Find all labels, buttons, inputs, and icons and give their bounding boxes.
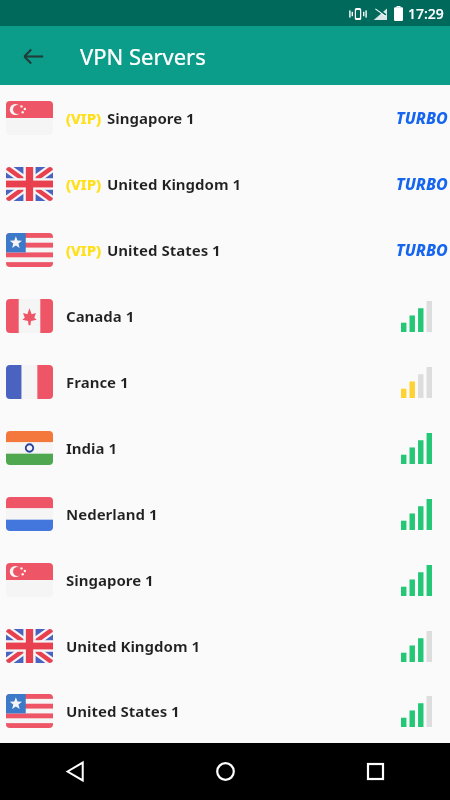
staticText: (VIP) xyxy=(66,240,102,260)
button[interactable]: (VIP) xyxy=(0,151,450,217)
button[interactable]: United States 1 xyxy=(0,679,450,743)
button[interactable]: Singapore 1 xyxy=(0,547,450,613)
button[interactable]: Nederland 1 xyxy=(0,481,450,547)
staticText: United Kingdom 1 xyxy=(66,636,201,656)
button[interactable]: India 1 xyxy=(0,415,450,481)
staticText: TURBO xyxy=(396,173,448,195)
button[interactable]: Back xyxy=(10,33,56,79)
staticText: United Kingdom 1 xyxy=(107,174,242,194)
staticText: Singapore 1 xyxy=(66,570,154,590)
staticText: TURBO xyxy=(396,239,448,261)
button[interactable]: Recents xyxy=(300,743,450,800)
staticText: Canada 1 xyxy=(66,306,135,326)
staticText: VPN Servers xyxy=(80,41,206,71)
button[interactable]: (VIP) xyxy=(0,217,450,283)
staticText: France 1 xyxy=(66,372,129,392)
staticText: (VIP) xyxy=(66,174,102,194)
staticText: TURBO xyxy=(396,107,448,129)
staticText: India 1 xyxy=(66,438,118,458)
button[interactable]: Back xyxy=(0,743,150,800)
staticText: United States 1 xyxy=(66,701,180,721)
button[interactable]: Canada 1 xyxy=(0,283,450,349)
staticText: Nederland 1 xyxy=(66,504,158,524)
button[interactable]: Home xyxy=(150,743,300,800)
staticText: (VIP) xyxy=(66,108,102,128)
staticText: Singapore 1 xyxy=(107,108,195,128)
button[interactable]: (VIP) xyxy=(0,85,450,151)
staticText: 17:29 xyxy=(408,4,444,23)
button[interactable]: United Kingdom 1 xyxy=(0,613,450,679)
staticText: United States 1 xyxy=(107,240,221,260)
button[interactable]: France 1 xyxy=(0,349,450,415)
